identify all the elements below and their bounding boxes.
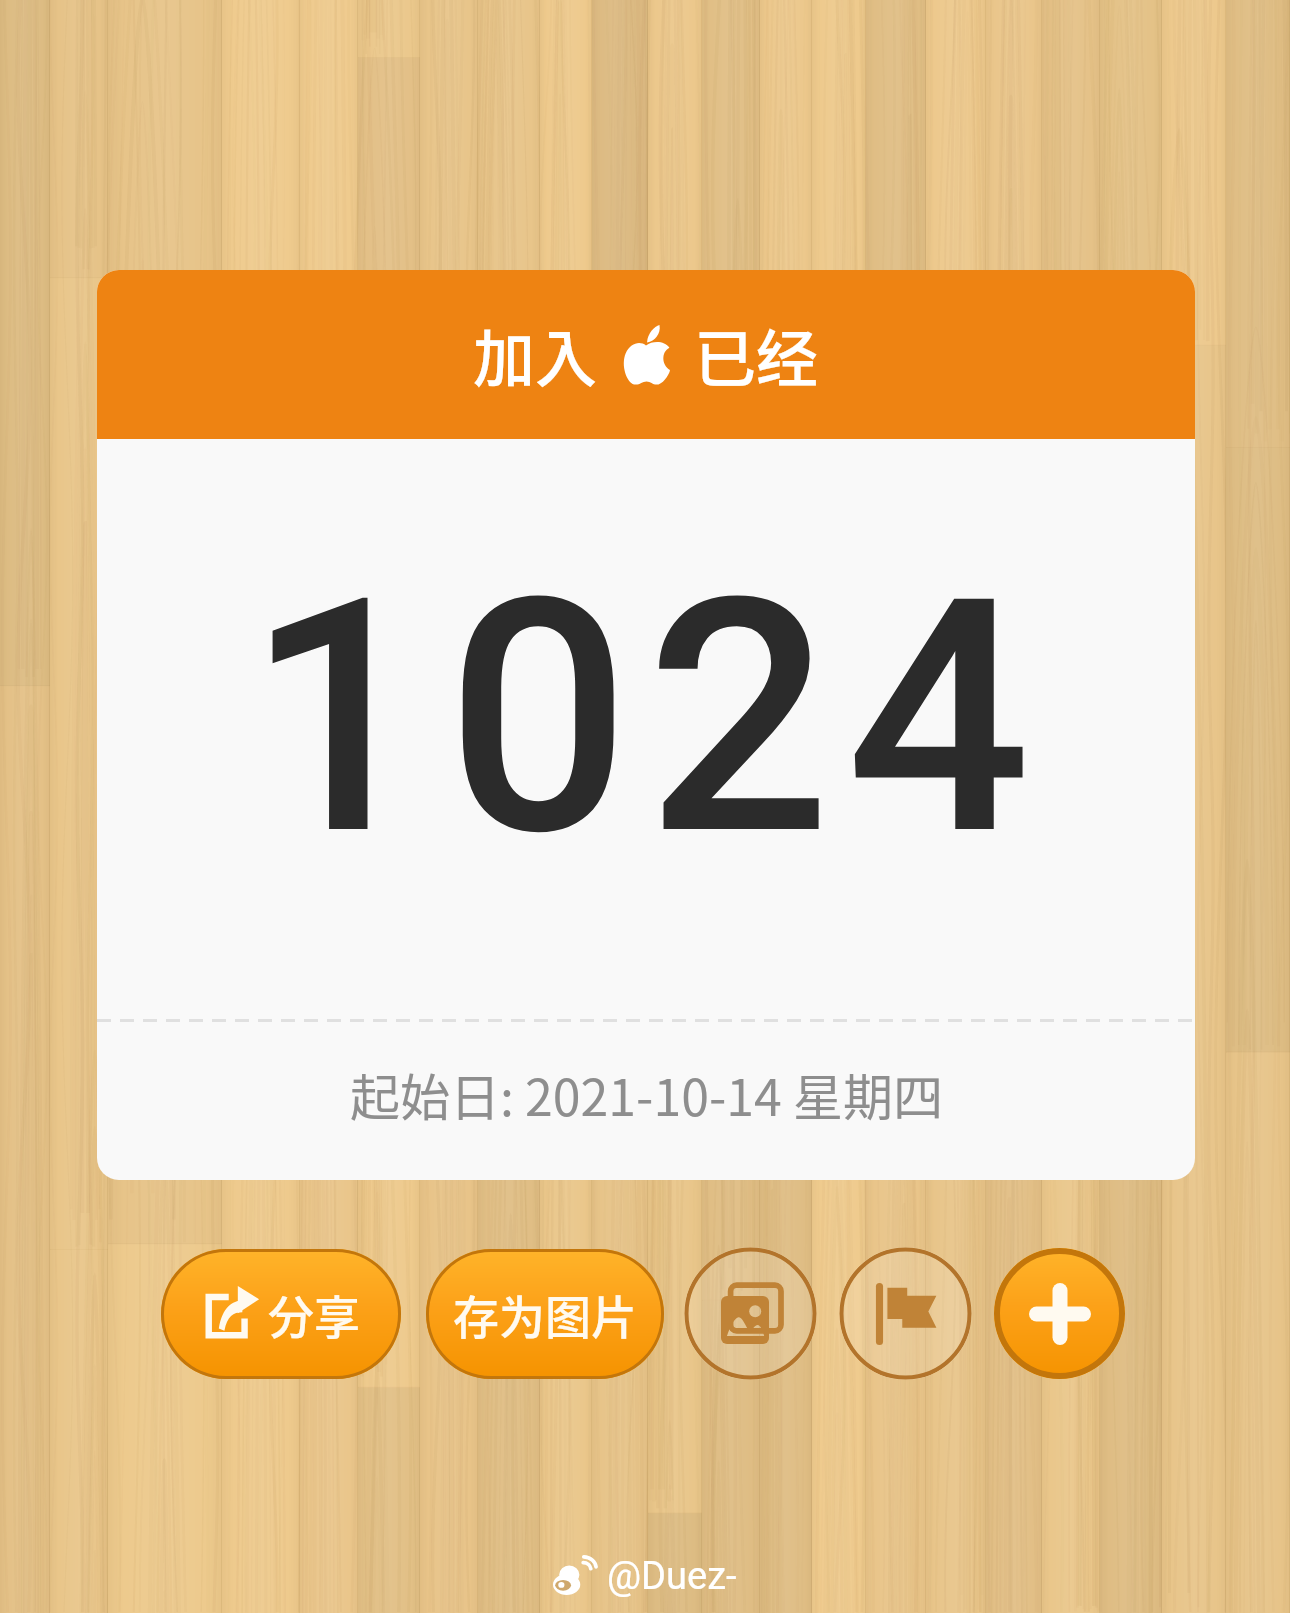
staticText: 起始日: 2021-10-14 星期四	[350, 1058, 943, 1130]
staticText: @Duez-	[607, 1554, 737, 1599]
button[interactable]: Gallery	[684, 1247, 817, 1380]
staticText: 已经	[694, 310, 819, 400]
button[interactable]: Add	[994, 1248, 1125, 1379]
staticText: 加入	[473, 310, 598, 400]
button[interactable]: 分享	[161, 1249, 401, 1379]
button[interactable]: Flag	[839, 1247, 972, 1380]
button[interactable]: 加入	[97, 270, 1195, 439]
staticText: 1024	[246, 528, 1047, 908]
staticText: 分享	[268, 1281, 360, 1348]
button[interactable]: 存为图片	[426, 1249, 664, 1379]
staticText: 存为图片	[453, 1281, 637, 1348]
